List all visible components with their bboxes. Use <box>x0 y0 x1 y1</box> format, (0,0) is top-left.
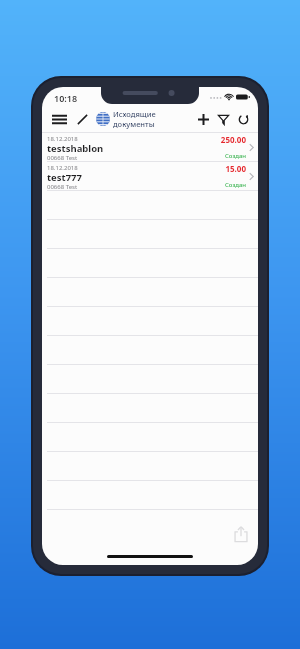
staticText: 18.12.2018 <box>47 164 78 172</box>
button[interactable] <box>42 249 258 278</box>
staticText: 00668 Test <box>47 183 78 191</box>
staticText: Исходящие <box>113 109 156 119</box>
button[interactable] <box>42 336 258 365</box>
button[interactable]: 18.12.2018 <box>42 162 258 191</box>
button[interactable]: Исходящие <box>96 109 193 129</box>
button[interactable] <box>42 423 258 452</box>
button[interactable] <box>42 452 258 481</box>
button[interactable] <box>42 394 258 423</box>
staticText: Создан <box>225 181 246 189</box>
staticText: test777 <box>47 171 82 184</box>
staticText: 10:18 <box>54 92 78 104</box>
staticText: Создан <box>225 152 246 160</box>
button[interactable]: Edit <box>71 108 93 130</box>
button[interactable] <box>42 278 258 307</box>
staticText: 250.00 <box>220 134 246 145</box>
button[interactable]: Menu <box>47 108 71 130</box>
button[interactable] <box>42 481 258 510</box>
staticText: 00668 Test <box>47 154 78 162</box>
button[interactable] <box>42 365 258 394</box>
button[interactable]: Add <box>193 108 213 130</box>
staticText: документы <box>113 119 155 129</box>
staticText: 18.12.2018 <box>47 135 78 143</box>
button[interactable]: Share <box>232 525 250 543</box>
button[interactable] <box>42 220 258 249</box>
staticText: testshablon <box>47 142 104 155</box>
button[interactable] <box>42 307 258 336</box>
button[interactable]: Refresh <box>233 108 253 130</box>
button[interactable] <box>42 191 258 220</box>
staticText: 15.00 <box>225 163 246 174</box>
button[interactable]: 18.12.2018 <box>42 133 258 162</box>
button[interactable]: Filter <box>213 108 233 130</box>
